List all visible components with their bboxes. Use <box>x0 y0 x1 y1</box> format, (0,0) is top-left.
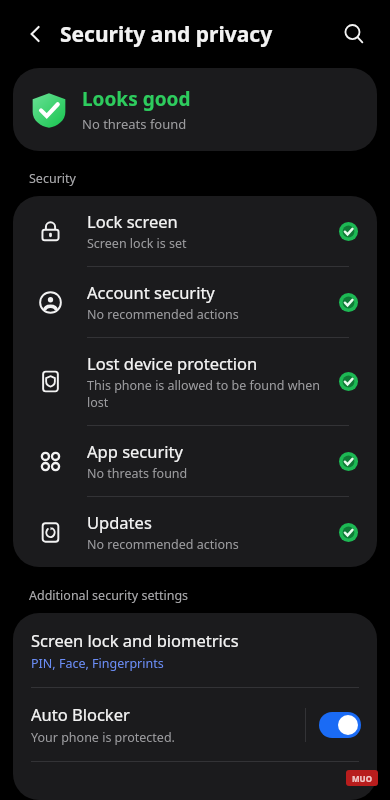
staticText: No recommended actions <box>87 536 239 553</box>
button[interactable]: Auto Blocker toggle, on <box>319 712 361 738</box>
button[interactable]: Updates <box>13 497 377 567</box>
staticText: This phone is allowed to be found when l… <box>87 377 333 411</box>
staticText: Lost device protection <box>87 352 258 374</box>
staticText: Lock screen <box>87 210 178 232</box>
button[interactable]: Lock screen <box>13 196 377 266</box>
button[interactable]: Lost device protection <box>13 338 377 425</box>
button[interactable]: Auto Blocker <box>13 688 377 761</box>
staticText: Updates <box>87 511 152 533</box>
staticText: No threats found <box>82 115 187 133</box>
button[interactable]: Security status of your devices <box>13 762 377 800</box>
button[interactable]: Account security <box>13 267 377 337</box>
button[interactable]: App security <box>13 426 377 496</box>
staticText: Security and privacy <box>60 20 273 49</box>
staticText: Screen lock is set <box>87 235 187 252</box>
staticText: Auto Blocker <box>31 703 130 725</box>
button[interactable]: Back <box>14 12 58 56</box>
button[interactable]: Search <box>332 12 376 56</box>
staticText: App security <box>87 440 183 462</box>
staticText: Security <box>29 170 76 187</box>
staticText: Account security <box>87 281 215 303</box>
staticText: PIN, Face, Fingerprints <box>31 655 164 672</box>
button[interactable]: Screen lock and biometrics <box>13 613 377 687</box>
staticText: Screen lock and biometrics <box>31 629 239 651</box>
staticText: MUO <box>352 773 372 784</box>
button[interactable]: Looks good <box>13 68 377 151</box>
staticText: Looks good <box>82 86 191 112</box>
staticText: No threats found <box>87 465 188 482</box>
staticText: Additional security settings <box>29 587 189 604</box>
staticText: Your phone is protected. <box>31 729 175 746</box>
staticText: No recommended actions <box>87 306 239 323</box>
